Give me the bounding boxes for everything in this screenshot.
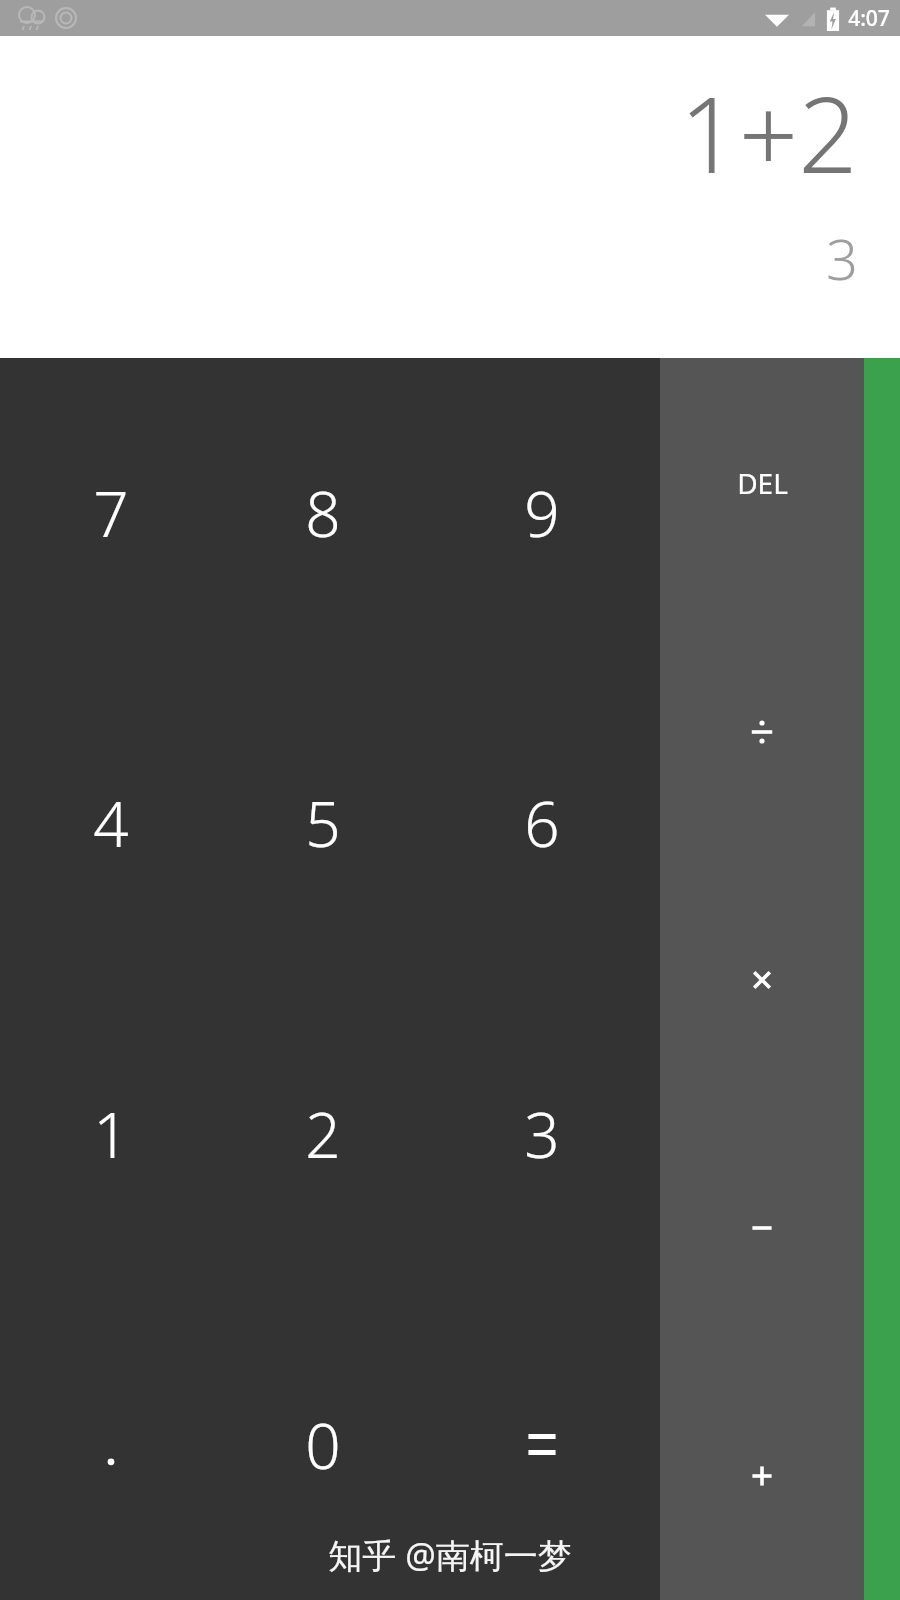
button[interactable]: 1 bbox=[0, 978, 221, 1289]
button[interactable]: 7 bbox=[0, 358, 221, 668]
button[interactable]: 2 bbox=[221, 978, 424, 1289]
staticText: 3 bbox=[524, 1092, 560, 1176]
staticText: 8 bbox=[305, 471, 341, 555]
button[interactable]: DEL bbox=[660, 358, 864, 607]
button[interactable]: 5 bbox=[221, 668, 424, 978]
staticText: 5 bbox=[305, 781, 341, 865]
staticText: 0 bbox=[305, 1403, 341, 1487]
button[interactable]: 9 bbox=[424, 358, 660, 668]
button[interactable] bbox=[424, 1289, 660, 1600]
staticText: 7 bbox=[93, 471, 129, 555]
staticText: 3 bbox=[826, 220, 858, 296]
button[interactable]: Subtract bbox=[660, 1104, 864, 1352]
staticText: 知乎 @南柯一梦 bbox=[328, 1532, 572, 1578]
staticText: 9 bbox=[524, 471, 560, 555]
button[interactable]: Multiply bbox=[660, 856, 864, 1104]
button[interactable]: 3 bbox=[424, 978, 660, 1289]
staticText: 1 bbox=[93, 1092, 129, 1176]
button[interactable]: 6 bbox=[424, 668, 660, 978]
button[interactable]: Add bbox=[660, 1352, 864, 1600]
button[interactable]: 0 bbox=[221, 1289, 424, 1600]
staticText: 4:07 bbox=[848, 4, 890, 33]
button[interactable]: 4 bbox=[0, 668, 221, 978]
staticText: 1+2 bbox=[679, 62, 858, 204]
staticText: 2 bbox=[305, 1092, 341, 1176]
button[interactable] bbox=[0, 1289, 221, 1600]
staticText: DEL bbox=[737, 464, 788, 502]
staticText: 6 bbox=[524, 781, 560, 865]
button[interactable]: 8 bbox=[221, 358, 424, 668]
staticText: 4 bbox=[93, 781, 129, 865]
button[interactable]: Divide bbox=[660, 607, 864, 856]
